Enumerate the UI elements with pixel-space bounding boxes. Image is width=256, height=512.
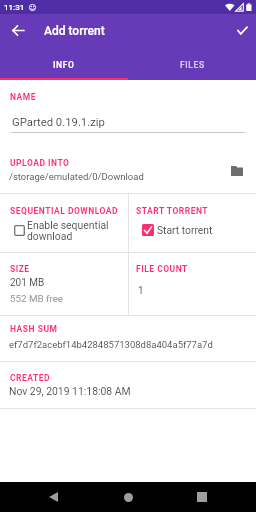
button[interactable]: NAME <box>0 80 256 132</box>
staticText: CREATED <box>10 373 51 383</box>
staticText: 11:31 <box>4 3 25 12</box>
button[interactable]: Home <box>113 482 143 512</box>
button[interactable]: Back <box>38 482 68 512</box>
button[interactable]: SEQUENTIAL DOWNLOAD <box>0 194 128 252</box>
staticText: FILES <box>180 60 205 70</box>
staticText: HASH SUM <box>10 324 58 334</box>
staticText: ef7d7f2acebf14b42848571308d8a404a5f77a7d <box>9 339 213 350</box>
button[interactable]: START TORRENT <box>129 194 202 252</box>
staticText: /storage/emulated/0/Download <box>9 171 144 182</box>
staticText: 552 MB free <box>10 293 64 304</box>
staticText: SEQUENTIAL DOWNLOAD <box>10 206 119 216</box>
staticText: NAME <box>10 92 37 102</box>
button[interactable]: Back <box>5 18 30 43</box>
staticText: GParted 0.19.1.zip <box>12 116 105 129</box>
staticText: Add torrent <box>44 24 105 38</box>
staticText: START TORRENT <box>136 206 209 216</box>
staticText: Nov 29, 2019 11:18:08 AM <box>9 385 131 397</box>
button[interactable]: Done <box>230 18 254 42</box>
staticText: Enable sequential download <box>27 219 109 242</box>
staticText: FILE COUNT <box>136 264 188 274</box>
staticText: Start torrent <box>157 224 213 236</box>
button[interactable]: INFO <box>0 48 128 81</box>
staticText: 1 <box>138 285 144 297</box>
button[interactable]: HASH SUM <box>0 316 256 361</box>
button[interactable]: FILES <box>128 48 256 81</box>
button[interactable]: Recents <box>187 482 217 512</box>
button[interactable]: UPLOAD INTO <box>0 133 256 193</box>
staticText: 201 MB <box>10 277 45 289</box>
staticText: INFO <box>53 60 75 70</box>
staticText: SIZE <box>10 264 30 274</box>
staticText: UPLOAD INTO <box>10 158 70 168</box>
